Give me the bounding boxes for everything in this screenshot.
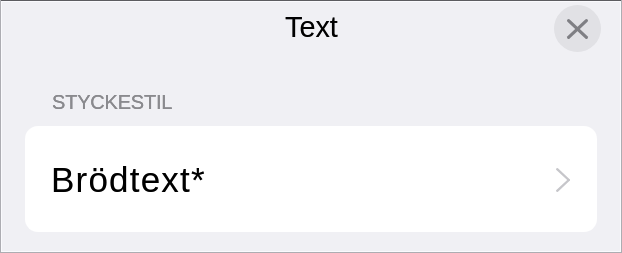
- staticText: Text: [285, 11, 338, 43]
- button[interactable]: Brödtext*: [25, 126, 597, 232]
- staticText: Text: [285, 11, 338, 43]
- staticText: Brödtext*: [51, 160, 206, 199]
- staticText: STYCKESTIL: [52, 91, 173, 113]
- staticText: Brödtext*: [51, 160, 206, 199]
- button[interactable]: Close: [554, 5, 601, 52]
- staticText: STYCKESTIL: [52, 91, 173, 113]
